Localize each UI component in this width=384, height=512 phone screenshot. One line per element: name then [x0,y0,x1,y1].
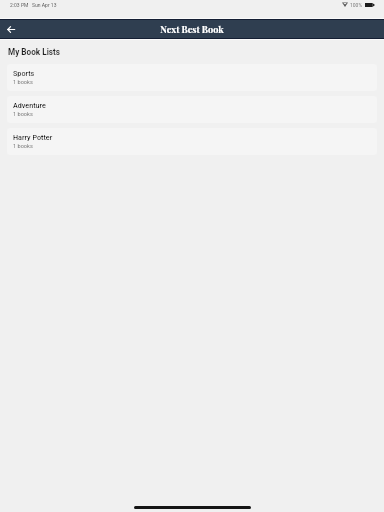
button[interactable]: Back [3,21,19,37]
staticText: Adventure [13,101,46,109]
staticText: Harry Potter [13,133,53,141]
button[interactable]: Harry Potter [7,128,377,155]
staticText: Next Best Book [160,23,224,35]
staticText: 100% [350,2,363,8]
staticText: 1 books [13,79,33,86]
button[interactable]: Adventure [7,96,377,123]
staticText: Sports [13,69,35,77]
staticText: 1 books [13,111,33,118]
staticText: 1 books [13,143,33,150]
staticText: My Book Lists [8,47,60,57]
staticText: 2:03 PM Sun Apr 13 [10,2,57,8]
button[interactable]: Sports [7,64,377,91]
